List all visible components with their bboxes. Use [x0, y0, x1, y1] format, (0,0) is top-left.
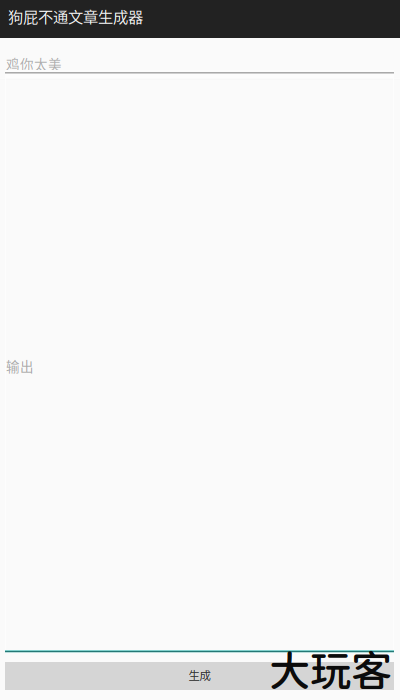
- staticText: 大玩客: [269, 646, 392, 695]
- button[interactable]: 生成: [5, 662, 394, 690]
- staticText: 生成: [188, 667, 210, 683]
- button[interactable]: 输入: [0, 38, 400, 78]
- staticText: 鸡你太美: [6, 54, 62, 73]
- staticText: 输出: [6, 356, 34, 375]
- staticText: 狗屁不通文章生成器: [8, 5, 143, 27]
